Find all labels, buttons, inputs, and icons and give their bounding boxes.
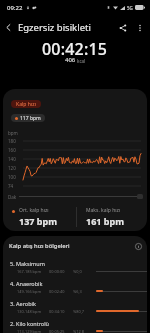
staticText: 74 — [8, 183, 14, 189]
staticText: 00:42:15 — [42, 38, 108, 60]
staticText: 113-129 bpm — [17, 329, 42, 333]
staticText: Ort. kalp hızı — [19, 207, 49, 214]
staticText: 180 — [8, 138, 16, 144]
staticText: 100 — [8, 174, 16, 180]
staticText: 130-148 bpm — [17, 309, 42, 314]
staticText: %80,7 — [73, 309, 84, 314]
staticText: kcal — [77, 58, 86, 64]
staticText: 00:34:10 — [49, 309, 65, 314]
button[interactable]: 5. Maksimum — [3, 259, 147, 279]
staticText: 2. Kilo kontrolü — [10, 320, 50, 327]
staticText: 00:05:25 — [49, 329, 65, 333]
staticText: 140 — [8, 156, 16, 162]
button[interactable]: 3. Aerobik — [3, 299, 147, 319]
button[interactable]: More options — [131, 19, 148, 36]
staticText: 00:00:00 — [49, 269, 65, 274]
staticText: 5G — [127, 5, 133, 11]
button[interactable]: 4. Anaerobik — [3, 279, 147, 299]
staticText: 117 bpm — [20, 115, 41, 122]
staticText: Kalp atış hızı bölgeleri — [9, 242, 132, 250]
staticText: 00:02:40 — [49, 289, 65, 294]
staticText: %0,0 — [73, 269, 82, 274]
staticText: 120 — [8, 165, 16, 171]
staticText: 161 bpm — [86, 215, 124, 227]
staticText: 160 — [8, 147, 16, 153]
button[interactable]: Back — [0, 19, 17, 36]
staticText: Kalp hızı — [16, 101, 36, 108]
staticText: bpm — [8, 130, 18, 136]
staticText: 09:22 — [7, 4, 23, 12]
staticText: 5. Maksimum — [10, 260, 45, 267]
staticText: Egzersiz bisikleti — [18, 21, 114, 34]
button[interactable]: Kalp hızı — [3, 89, 147, 231]
staticText: %12,8 — [73, 329, 84, 333]
staticText: %6,3 — [73, 289, 82, 294]
staticText: 3. Aerobik — [10, 300, 36, 307]
staticText: 137 bpm — [19, 215, 57, 227]
staticText: 4. Anaerobik — [10, 280, 43, 287]
staticText: 406 — [65, 56, 76, 64]
staticText: Maks. kalp hızı — [86, 207, 121, 214]
staticText: Dak — [8, 194, 17, 200]
staticText: 167-185 bpm — [17, 269, 42, 274]
button[interactable]: 2. Kilo kontrolü — [3, 319, 147, 333]
button[interactable]: Share — [114, 19, 131, 36]
button[interactable]: Info — [132, 240, 144, 252]
staticText: 149-166 bpm — [17, 289, 42, 294]
